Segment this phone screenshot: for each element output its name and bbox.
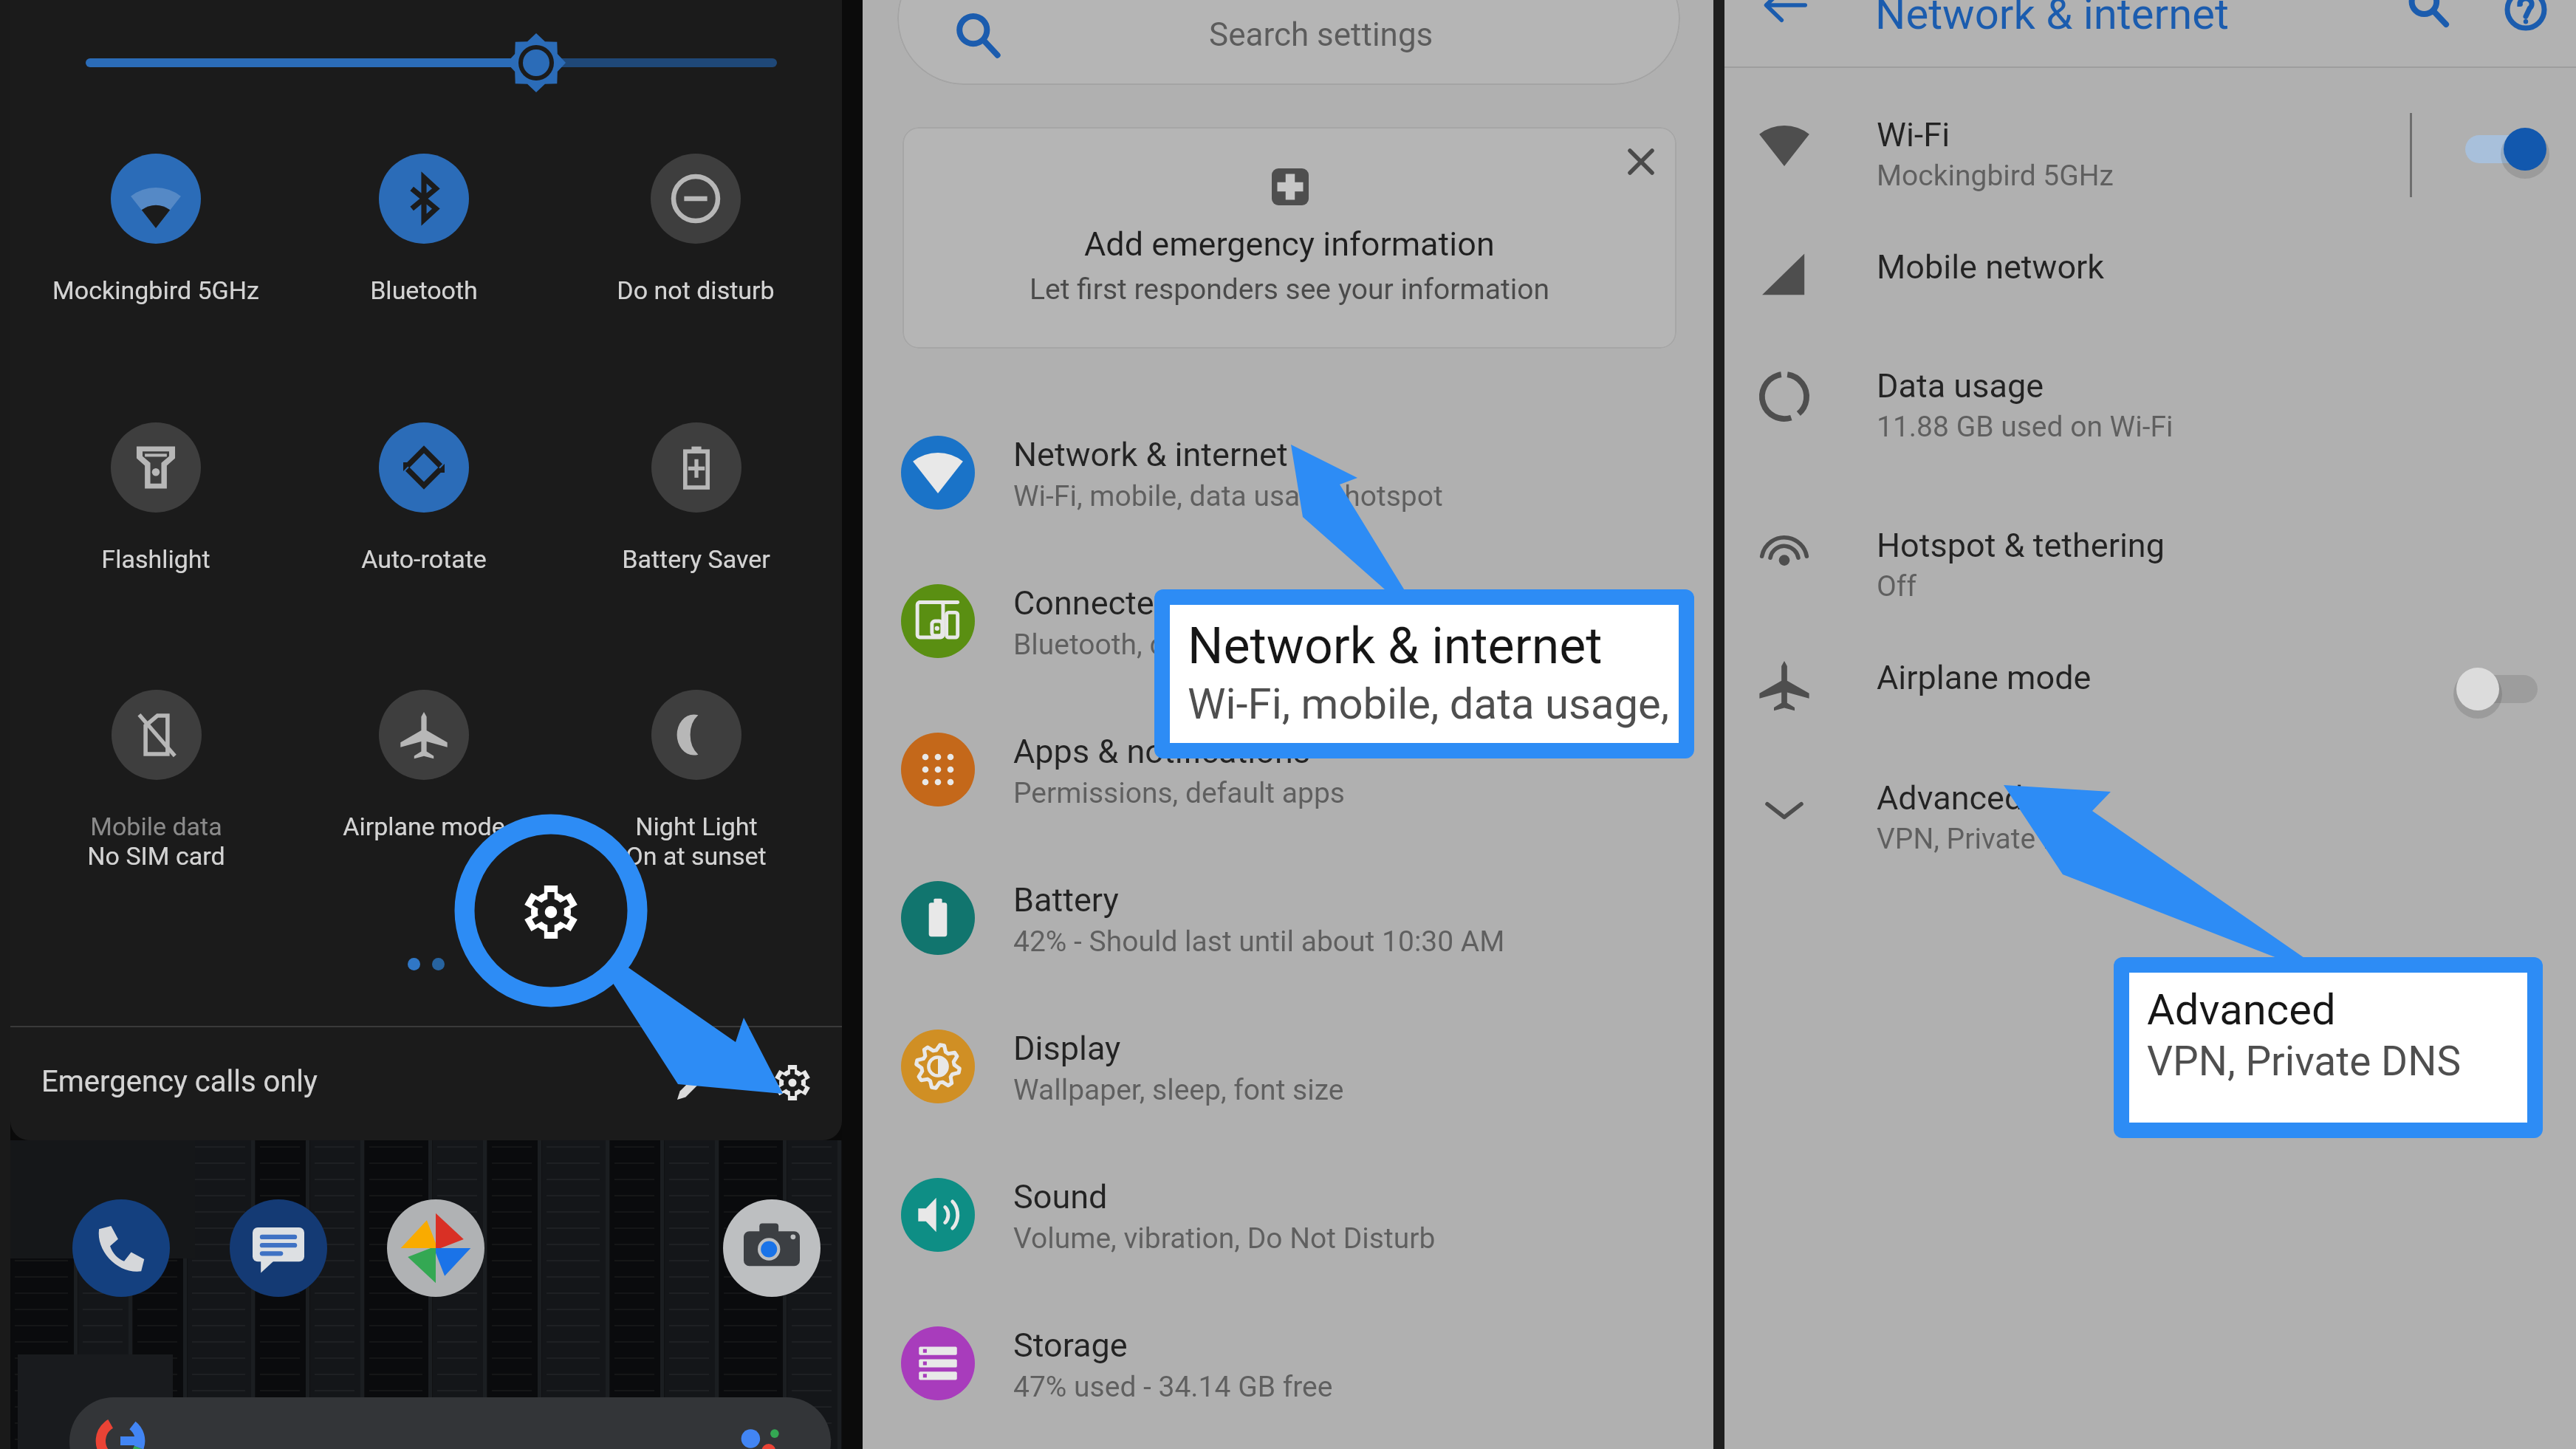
button[interactable]: Photos	[387, 1199, 484, 1297]
staticText: Bluetooth	[370, 275, 478, 305]
button[interactable]: Settings	[759, 1049, 826, 1116]
staticText: Network & internet	[1875, 0, 2229, 39]
staticText: 42% - Should last until about 10:30 AM	[1013, 925, 1505, 959]
staticText: Connected devices	[1013, 583, 1294, 623]
button[interactable]: Airplane mode toggle	[2452, 652, 2555, 726]
button[interactable]: Battery Saver	[561, 422, 830, 607]
staticText: Volume, vibration, Do Not Disturb	[1013, 1222, 1436, 1256]
button[interactable]: Airplane mode	[290, 690, 558, 874]
staticText: Wallpaper, sleep, font size	[1013, 1073, 1344, 1107]
button[interactable]: Dismiss	[1611, 132, 1671, 191]
button[interactable]: Battery	[863, 843, 1713, 992]
button[interactable]: Mobile data	[21, 690, 290, 874]
staticText: Mockingbird 5GHz	[1877, 159, 2114, 193]
button[interactable]: Hotspot & tethering	[1724, 490, 2576, 620]
staticText: Hotspot & tethering	[1877, 526, 2165, 565]
button[interactable]: Auto-rotate	[290, 422, 558, 607]
button[interactable]: Mockingbird 5GHz	[21, 154, 290, 338]
button[interactable]: Wi-Fi	[1724, 80, 2576, 210]
button[interactable]: Connected devices	[863, 547, 1713, 695]
button[interactable]: Camera	[723, 1199, 821, 1297]
staticText: Battery Saver	[622, 544, 770, 574]
staticText: Advanced	[2147, 984, 2336, 1035]
staticText: Data usage	[1877, 366, 2044, 405]
staticText: On at sunset	[626, 841, 767, 871]
staticText: Mobile data	[90, 812, 222, 841]
button[interactable]: Search	[2391, 0, 2465, 40]
staticText: Apps & notifications	[1013, 732, 1310, 771]
staticText: Storage	[1013, 1326, 1128, 1365]
button[interactable]: Open Settings	[517, 878, 585, 946]
staticText: Flashlight	[101, 544, 210, 574]
staticText: Display	[1013, 1029, 1121, 1068]
staticText: 47% used - 34.14 GB free	[1013, 1370, 1333, 1404]
button[interactable]: Apps & notifications	[863, 695, 1713, 843]
button[interactable]: Sound	[863, 1140, 1713, 1289]
button[interactable]: Search	[69, 1397, 831, 1449]
button[interactable]: Do not disturb	[561, 154, 830, 338]
button[interactable]: Back	[1748, 0, 1822, 38]
staticText: Off	[1877, 569, 1916, 603]
staticText: Mobile network	[1877, 247, 2105, 287]
staticText: Auto-rotate	[361, 544, 487, 574]
button[interactable]: Data usage	[1724, 331, 2576, 461]
button[interactable]: Edit tiles	[660, 1050, 727, 1117]
staticText: VPN, Private DNS	[1877, 822, 2100, 856]
button[interactable]: Bluetooth	[290, 154, 558, 338]
staticText: Let first responders see your informatio…	[1030, 273, 1549, 306]
staticText: Airplane mode	[1877, 658, 2092, 697]
staticText: Wi-Fi, mobile, data usage,	[1188, 679, 1670, 729]
staticText: Advanced	[1877, 778, 2024, 818]
button[interactable]: Messages	[230, 1199, 327, 1297]
button[interactable]: Emergency calls only	[41, 1064, 318, 1099]
button[interactable]: Display	[863, 992, 1713, 1140]
staticText: Bluetooth, cast	[1013, 628, 1205, 662]
button[interactable]: Storage	[863, 1289, 1713, 1437]
button[interactable]: Flashlight	[21, 422, 290, 607]
staticText: Airplane mode	[343, 812, 505, 841]
button[interactable]: Network & internet	[863, 398, 1713, 547]
button[interactable]: Airplane mode	[1724, 620, 2576, 750]
staticText: Network & internet	[1013, 435, 1288, 474]
button[interactable]: Wi-Fi toggle	[2452, 112, 2555, 186]
staticText: Sound	[1013, 1177, 1108, 1216]
staticText: Permissions, default apps	[1013, 776, 1345, 810]
staticText: Night Light	[635, 812, 758, 841]
staticText: Emergency calls only	[41, 1064, 318, 1099]
staticText: 11.88 GB used on Wi-Fi	[1877, 410, 2173, 444]
staticText: Mockingbird 5GHz	[52, 275, 259, 305]
button[interactable]: Add emergency information	[902, 127, 1676, 349]
button[interactable]: Night Light	[561, 690, 830, 874]
staticText: Network & internet	[1188, 617, 1603, 676]
staticText: Wi-Fi, mobile, data usage, hotspot	[1013, 479, 1443, 513]
button[interactable]: Search settings	[897, 0, 1680, 85]
button[interactable]: Phone	[72, 1199, 170, 1297]
staticText: Do not disturb	[617, 275, 775, 305]
staticText: No SIM card	[87, 841, 225, 871]
staticText: Battery	[1013, 880, 1119, 919]
staticText: Wi-Fi	[1877, 115, 1950, 154]
staticText: Add emergency information	[1084, 225, 1495, 264]
button[interactable]: Advanced	[1724, 743, 2576, 873]
button[interactable]: Help	[2489, 0, 2563, 43]
button[interactable]: Mobile network	[1724, 209, 2576, 339]
staticText: Search settings	[1209, 16, 1433, 54]
staticText: VPN, Private DNS	[2147, 1038, 2462, 1085]
